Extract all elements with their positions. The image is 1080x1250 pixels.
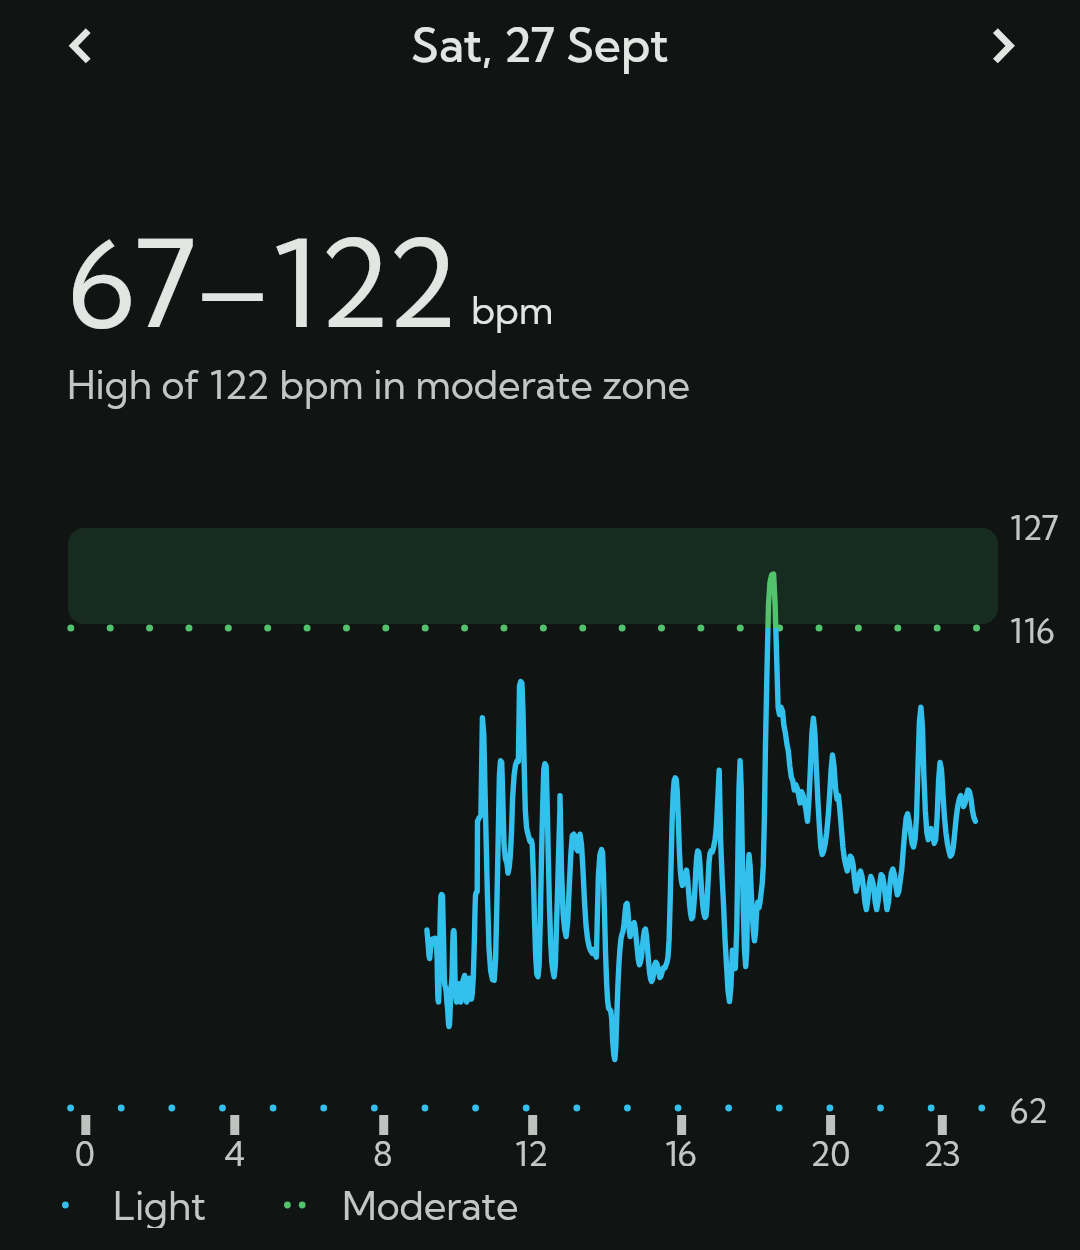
staticText: Light	[113, 1182, 207, 1228]
staticText: High of 122 bpm in moderate zone	[67, 361, 690, 409]
staticText: Moderate	[342, 1182, 519, 1228]
staticText: 116	[1010, 610, 1055, 651]
staticText: 62	[1010, 1090, 1048, 1131]
staticText: 16	[665, 1132, 697, 1166]
staticText: 23	[923, 1132, 961, 1166]
staticText: 12	[515, 1132, 549, 1166]
button[interactable]: Moderate	[272, 1182, 519, 1228]
staticText: 0	[75, 1132, 95, 1166]
staticText: 20	[810, 1132, 851, 1166]
button[interactable]: Light	[50, 1182, 207, 1228]
staticText: 67–122	[68, 208, 459, 358]
staticText: 4	[224, 1132, 245, 1166]
staticText: Sat, 27 Sept	[411, 16, 669, 74]
staticText: 8	[373, 1132, 393, 1166]
staticText: 127	[1010, 507, 1059, 548]
button[interactable]: Previous day	[46, 12, 110, 76]
button[interactable]: Next day	[970, 12, 1034, 76]
staticText: bpm	[471, 287, 554, 334]
